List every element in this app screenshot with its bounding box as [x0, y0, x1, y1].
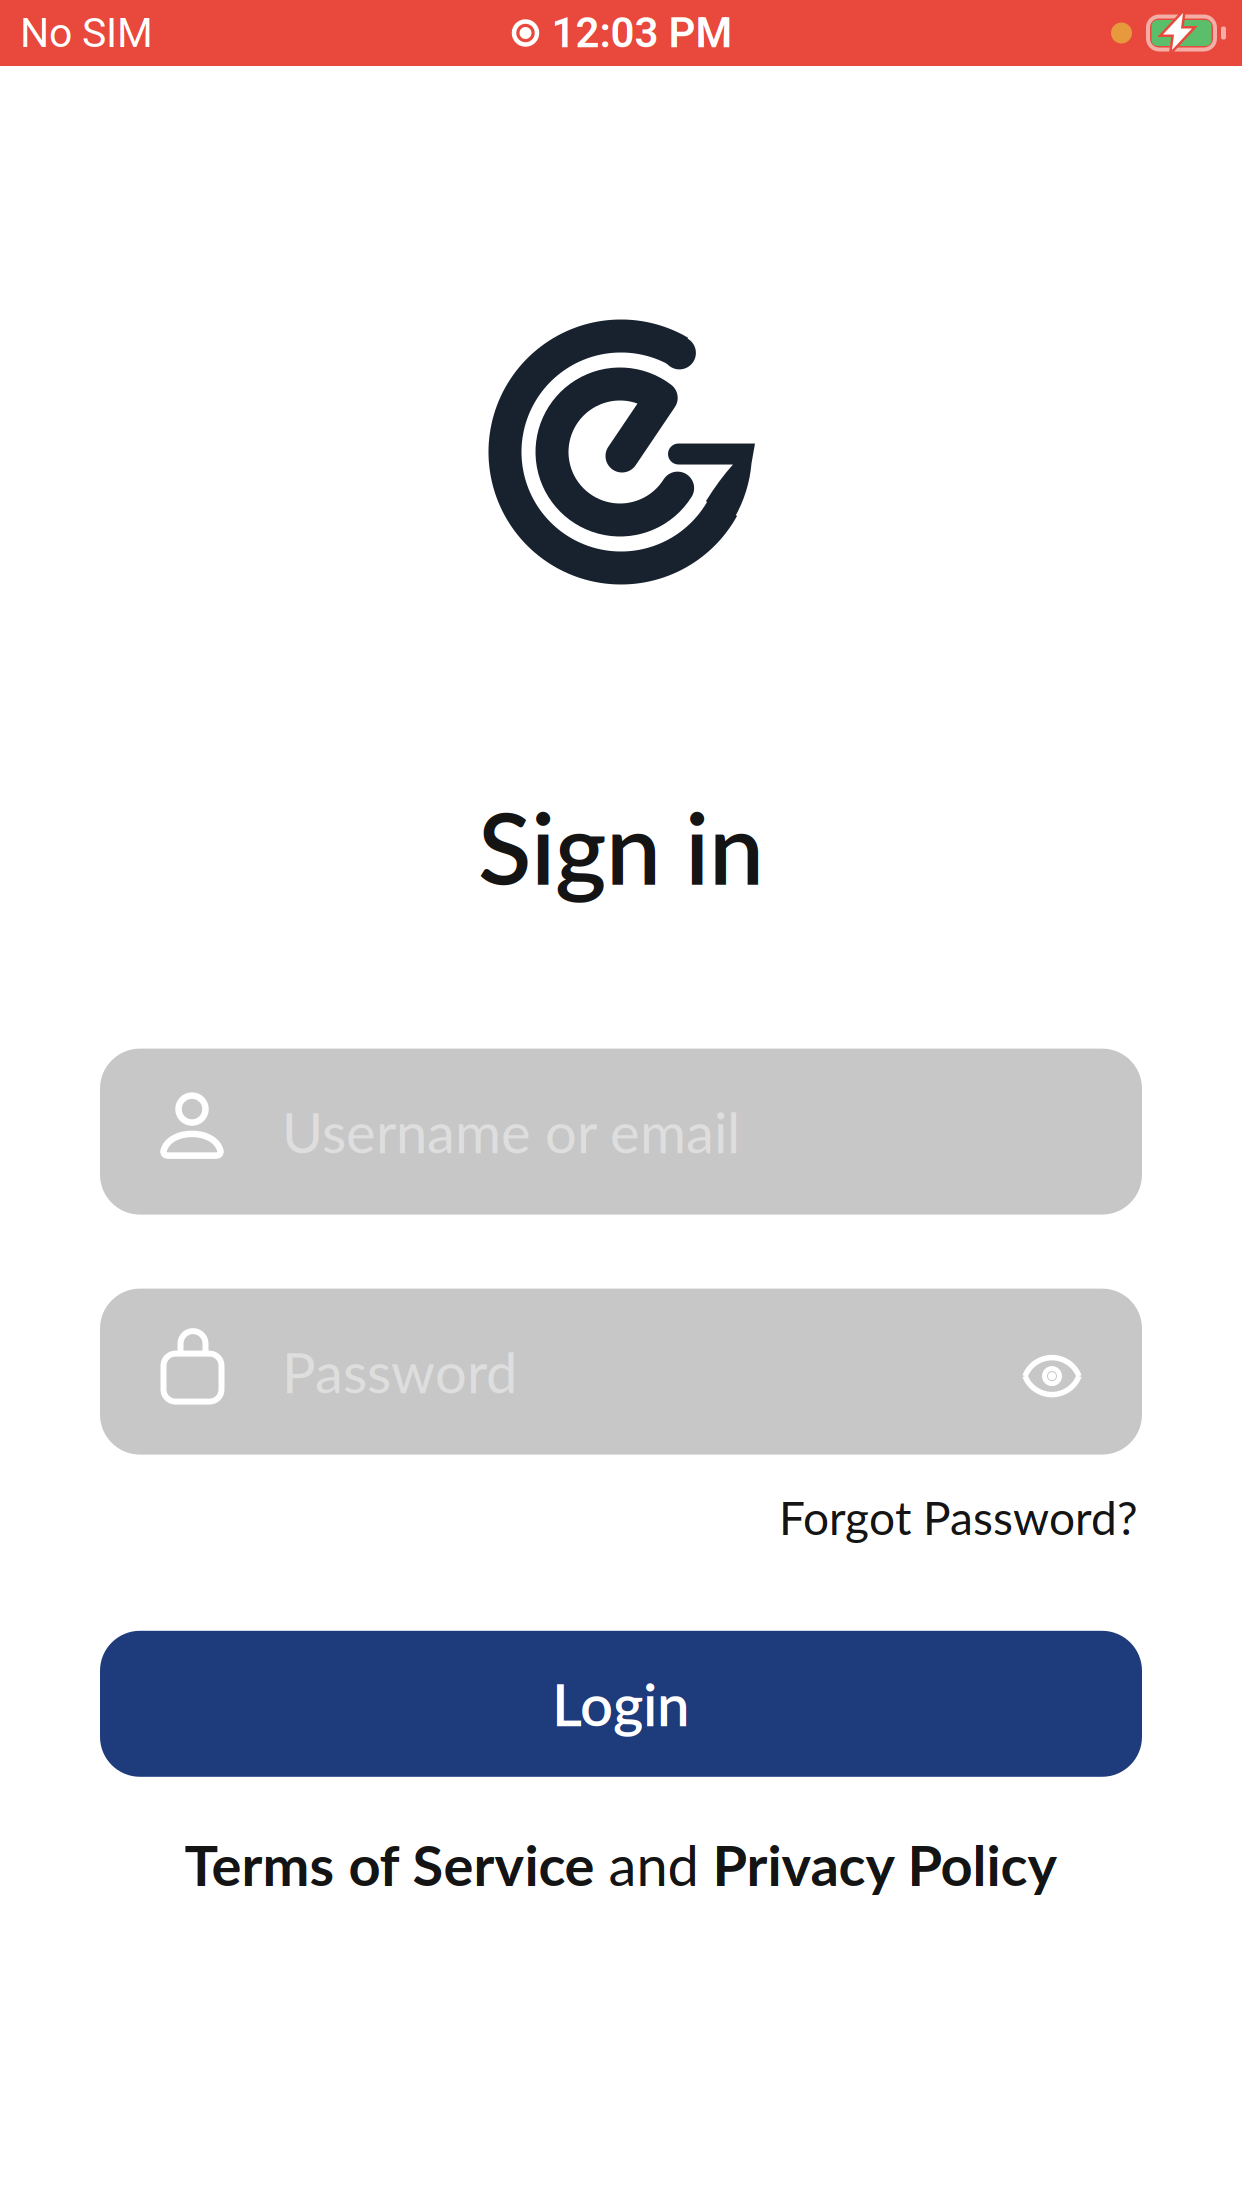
staticText: Privacy Policy: [712, 1831, 1057, 1898]
staticText: No SIM: [20, 9, 153, 57]
button[interactable]: Login: [100, 1631, 1142, 1777]
staticText: Forgot Password?: [779, 1490, 1138, 1545]
button[interactable]: Show password: [1020, 1346, 1084, 1398]
button[interactable]: Forgot Password?: [779, 1490, 1138, 1545]
button[interactable]: Username or email: [100, 1049, 1142, 1215]
staticText: Password: [282, 1338, 517, 1405]
button[interactable]: Password: [100, 1289, 1142, 1455]
button[interactable]: Privacy Policy: [712, 1831, 1057, 1898]
staticText: Terms of Service: [184, 1831, 594, 1898]
staticText: Username or email: [282, 1098, 740, 1165]
staticText: 12:03 PM: [551, 8, 732, 58]
staticText: and: [594, 1831, 712, 1898]
button[interactable]: Terms of Service: [184, 1831, 594, 1898]
staticText: Sign in: [478, 788, 764, 906]
staticText: Login: [552, 1669, 690, 1739]
